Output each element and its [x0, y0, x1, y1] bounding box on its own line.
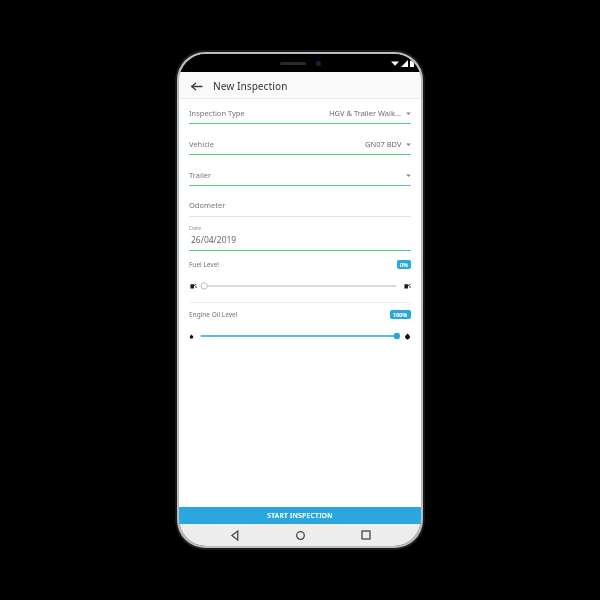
- button[interactable]: Engine Oil Level: [189, 329, 411, 343]
- button[interactable]: START INSPECTION: [179, 507, 421, 524]
- button[interactable]: Fuel Level: [189, 279, 411, 293]
- button[interactable]: Inspection Type: [189, 108, 411, 124]
- staticText: GN07 BDV: [365, 139, 402, 149]
- staticText: Inspection Type: [189, 108, 245, 118]
- button[interactable]: Vehicle: [189, 139, 411, 155]
- staticText: START INSPECTION: [267, 511, 333, 520]
- staticText: 100%: [393, 311, 408, 318]
- button[interactable]: Navigate back: [187, 77, 205, 95]
- staticText: Date: [189, 224, 202, 231]
- staticText: Vehicle: [189, 139, 214, 149]
- staticText: Trailer: [189, 170, 212, 180]
- staticText: 26/04/2019: [191, 234, 237, 246]
- button[interactable]: Trailer: [189, 170, 411, 186]
- staticText: Fuel Level: [189, 260, 220, 269]
- button[interactable]: Back: [225, 525, 245, 545]
- button[interactable]: Home: [290, 525, 310, 545]
- button[interactable]: Recent apps: [356, 525, 376, 545]
- staticText: Odometer: [189, 200, 226, 210]
- button[interactable]: Date: [189, 224, 411, 251]
- staticText: Engine Oil Level: [189, 310, 238, 319]
- staticText: 0%: [400, 261, 408, 268]
- staticText: HGV & Trailer Walk...: [329, 108, 402, 118]
- button[interactable]: Odometer: [189, 200, 411, 217]
- staticText: New Inspection: [213, 79, 288, 93]
